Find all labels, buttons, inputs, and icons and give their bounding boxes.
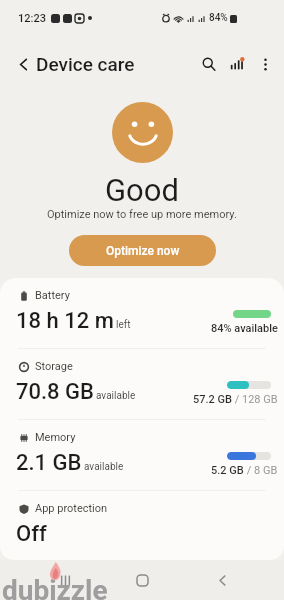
staticText: Good — [105, 172, 179, 208]
button[interactable]: Battery — [0, 278, 284, 348]
staticText: available — [84, 461, 124, 473]
staticText: App protection — [35, 502, 108, 515]
staticText: / 128 GB — [232, 393, 278, 406]
button[interactable]: App protection — [0, 491, 284, 560]
staticText: Battery — [35, 289, 70, 302]
staticText: 2.1 GB — [16, 450, 82, 476]
staticText: Device care — [36, 53, 135, 75]
button[interactable]: Back — [206, 564, 238, 596]
staticText: available — [96, 390, 136, 402]
staticText: left — [116, 319, 131, 331]
button[interactable]: Memory — [0, 420, 284, 490]
button[interactable]: Home — [126, 564, 158, 596]
button[interactable]: Optimize now — [69, 235, 216, 266]
button[interactable]: Search — [196, 51, 222, 77]
staticText: Off — [16, 521, 47, 547]
staticText: dubizzle — [2, 574, 108, 600]
button[interactable]: Statistics — [224, 51, 250, 77]
staticText: 18 h 12 m — [16, 308, 114, 334]
staticText: 84% available — [211, 322, 278, 335]
staticText: 84% — [209, 12, 228, 24]
staticText: 70.8 GB — [16, 379, 94, 405]
staticText: / 8 GB — [244, 464, 278, 477]
button[interactable]: Back — [10, 51, 36, 77]
staticText: Memory — [35, 431, 76, 444]
staticText: 5.2 GB — [211, 464, 244, 477]
staticText: Storage — [35, 360, 73, 373]
staticText: Optimize now — [106, 244, 180, 258]
staticText: 12:23 — [18, 12, 46, 25]
staticText: 57.2 GB — [193, 393, 232, 406]
button[interactable]: Recent apps — [49, 564, 81, 596]
button[interactable]: More options — [252, 51, 278, 77]
button[interactable]: Storage — [0, 349, 284, 419]
staticText: Optimize now to free up more memory. — [47, 208, 237, 221]
